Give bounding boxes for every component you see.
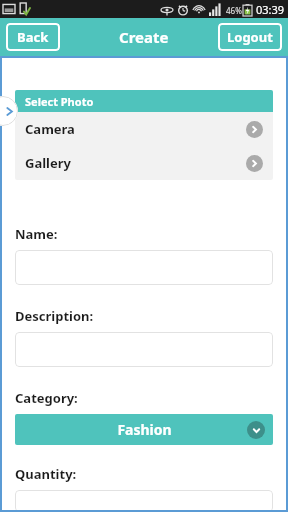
button[interactable]: Gallery <box>15 146 273 180</box>
staticText: Category: <box>15 389 78 407</box>
button[interactable]: Logout <box>218 23 282 51</box>
staticText: Create <box>119 27 169 47</box>
staticText: 03:39 <box>256 2 285 17</box>
staticText: Camera <box>25 120 75 138</box>
button[interactable] <box>15 332 273 367</box>
staticText: 46% <box>226 5 242 16</box>
staticText: Name: <box>15 225 58 243</box>
staticText: Gallery <box>25 154 71 172</box>
button[interactable]: Open navigation drawer <box>0 96 18 126</box>
button[interactable] <box>15 490 273 512</box>
staticText: Logout <box>227 28 273 46</box>
staticText: Select Photo <box>25 94 94 109</box>
button[interactable]: Back <box>6 23 60 51</box>
other: Open category list <box>247 421 265 439</box>
button[interactable]: Camera <box>15 112 273 146</box>
button[interactable]: Fashion <box>15 414 273 445</box>
staticText: Back <box>17 28 49 46</box>
staticText: Description: <box>15 307 94 325</box>
staticText: Quantity: <box>15 465 77 483</box>
button[interactable] <box>15 250 273 285</box>
staticText: Fashion <box>117 420 172 439</box>
